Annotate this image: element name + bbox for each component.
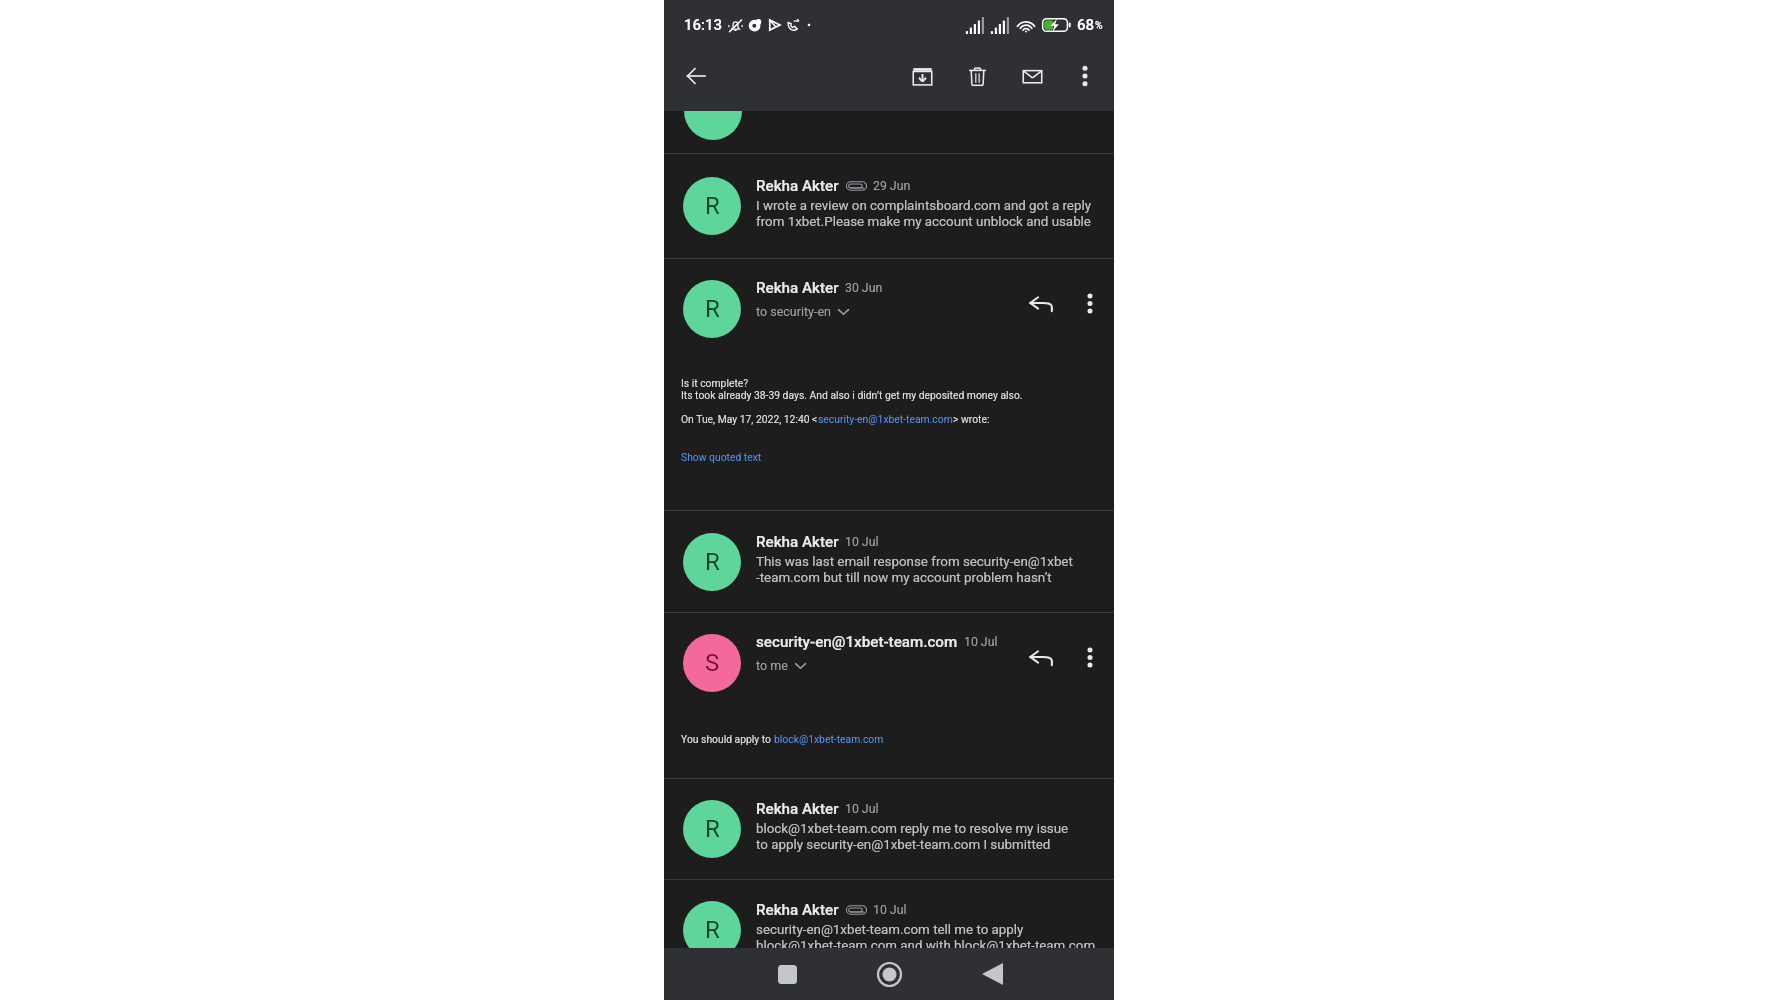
- staticText: %: [1095, 19, 1103, 31]
- staticText: This was last email response from securi…: [756, 554, 1073, 586]
- button[interactable]: Delete: [957, 56, 997, 96]
- button[interactable]: More options: [1071, 638, 1109, 676]
- staticText: Rekha Akter: [756, 279, 839, 297]
- button[interactable]: to me: [756, 658, 807, 673]
- staticText: to me: [756, 658, 788, 673]
- staticText: 30 Jun: [845, 281, 883, 295]
- button[interactable]: to security-en: [756, 304, 850, 319]
- staticText: Its took already 38-39 days. And also i …: [681, 389, 1023, 401]
- staticText: 10 Jul: [845, 802, 879, 816]
- staticText: > wrote:: [953, 413, 990, 425]
- staticText: Show quoted text: [681, 451, 762, 463]
- button[interactable]: Contact photo: [664, 154, 1114, 258]
- staticText: R: [705, 192, 720, 220]
- button[interactable]: Contact photo: [683, 634, 741, 692]
- staticText: security-en@1xbet-team.com: [818, 413, 953, 425]
- staticText: security-en@1xbet-team.com: [756, 633, 958, 651]
- staticText: 68: [1077, 16, 1095, 34]
- staticText: On Tue, May 17, 2022, 12:40 <: [681, 413, 818, 425]
- button[interactable]: Recents: [765, 952, 809, 996]
- button[interactable]: Rekha Akter: [756, 279, 883, 297]
- staticText: R: [705, 916, 720, 944]
- staticText: 10 Jul: [964, 635, 998, 649]
- staticText: S: [705, 649, 720, 677]
- button[interactable]: Show quoted text: [681, 451, 762, 463]
- button[interactable]: More options: [1071, 284, 1109, 322]
- button[interactable]: Contact photo: [683, 177, 741, 235]
- button[interactable]: Archive: [902, 56, 942, 96]
- button[interactable]: security-en@1xbet-team.com: [756, 633, 998, 651]
- button[interactable]: Mark unread: [1012, 56, 1052, 96]
- staticText: 10 Jul: [845, 535, 879, 549]
- button[interactable]: Back: [970, 952, 1014, 996]
- staticText: R: [705, 815, 720, 843]
- staticText: You should apply to: [681, 733, 774, 745]
- button[interactable]: Back: [675, 55, 717, 97]
- staticText: Rekha Akter: [756, 177, 839, 195]
- staticText: 16:13: [684, 16, 723, 34]
- button[interactable]: Reply: [1022, 639, 1060, 677]
- button[interactable]: Reply: [1022, 285, 1060, 323]
- staticText: to security-en: [756, 304, 831, 319]
- button[interactable]: Contact photo: [664, 779, 1114, 879]
- staticText: block@1xbet-team.com: [774, 733, 884, 745]
- staticText: Rekha Akter: [756, 533, 839, 551]
- staticText: Is it complete?: [681, 377, 749, 389]
- staticText: Rekha Akter: [756, 800, 839, 818]
- staticText: block@1xbet-team.com reply me to resolve…: [756, 821, 1069, 853]
- button[interactable]: Contact photo: [683, 901, 741, 948]
- button[interactable]: More options: [1065, 56, 1105, 96]
- button[interactable]: Home: [867, 952, 911, 996]
- staticText: R: [705, 548, 720, 576]
- staticText: Rekha Akter: [756, 901, 839, 919]
- staticText: I wrote a review on complaintsboard.com …: [756, 198, 1091, 230]
- staticText: R: [705, 295, 720, 323]
- staticText: 29 Jun: [873, 179, 911, 193]
- staticText: security-en@1xbet-team.com tell me to ap…: [756, 922, 1096, 948]
- staticText: 10 Jul: [873, 903, 907, 917]
- button[interactable]: Contact photo: [683, 800, 741, 858]
- button[interactable]: Contact photo: [664, 880, 1114, 948]
- button[interactable]: Contact photo: [683, 280, 741, 338]
- button[interactable]: Contact photo: [683, 533, 741, 591]
- button[interactable]: Contact photo: [664, 511, 1114, 612]
